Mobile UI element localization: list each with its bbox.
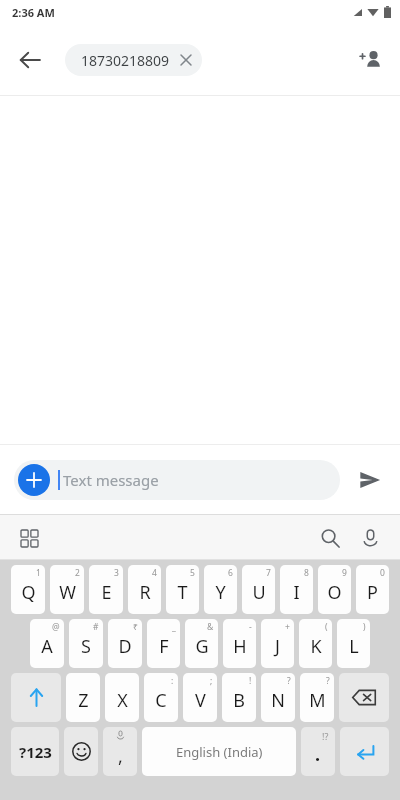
- staticText: #: [93, 621, 99, 633]
- staticText: !: [249, 675, 252, 687]
- staticText: -: [249, 621, 252, 633]
- staticText: Q: [21, 580, 36, 605]
- button[interactable]: ₹: [108, 619, 142, 668]
- staticText: 3: [114, 567, 119, 579]
- button[interactable]: 8: [280, 565, 313, 614]
- staticText: @: [52, 621, 60, 633]
- button[interactable]: Back: [8, 38, 52, 82]
- button[interactable]: -: [223, 619, 256, 668]
- staticText: R: [139, 580, 151, 605]
- button[interactable]: (: [299, 619, 332, 668]
- staticText: 2: [75, 567, 80, 579]
- button[interactable]: 18730218809: [65, 44, 202, 76]
- button[interactable]: Z: [66, 673, 100, 722]
- staticText: S: [81, 634, 91, 659]
- button[interactable]: 0: [356, 565, 389, 614]
- staticText: E: [101, 580, 112, 605]
- button[interactable]: 5: [166, 565, 199, 614]
- staticText: U: [252, 580, 266, 605]
- button[interactable]: @: [30, 619, 64, 668]
- button[interactable]: ,: [103, 727, 137, 776]
- button[interactable]: Attach: [18, 464, 50, 496]
- staticText: C: [155, 688, 167, 713]
- staticText: B: [233, 688, 245, 713]
- staticText: ?: [287, 675, 291, 687]
- button[interactable]: 2: [50, 565, 84, 614]
- staticText: ): [363, 621, 366, 633]
- staticText: W: [59, 580, 76, 605]
- staticText: 9: [342, 567, 347, 579]
- staticText: N: [271, 688, 285, 713]
- staticText: L: [349, 634, 359, 659]
- staticText: M: [309, 688, 326, 713]
- button[interactable]: X: [105, 673, 139, 722]
- staticText: 4: [152, 567, 157, 579]
- staticText: X: [117, 688, 128, 713]
- button[interactable]: 6: [204, 565, 237, 614]
- button[interactable]: English (India): [142, 727, 296, 776]
- staticText: D: [118, 634, 132, 659]
- button[interactable]: ?: [300, 673, 334, 722]
- staticText: .: [315, 742, 321, 767]
- staticText: A: [41, 634, 53, 659]
- button[interactable]: &: [185, 619, 218, 668]
- staticText: K: [310, 634, 322, 659]
- staticText: 6: [228, 567, 233, 579]
- button[interactable]: 3: [89, 565, 123, 614]
- button[interactable]: Emoji: [64, 727, 98, 776]
- button[interactable]: _: [147, 619, 180, 668]
- button[interactable]: ?123: [11, 727, 59, 776]
- staticText: !?: [322, 730, 329, 742]
- staticText: 1: [36, 567, 41, 579]
- staticText: G: [195, 634, 209, 659]
- button[interactable]: 4: [128, 565, 161, 614]
- staticText: :: [171, 675, 174, 687]
- staticText: F: [159, 634, 169, 659]
- button[interactable]: +: [261, 619, 294, 668]
- staticText: +: [285, 621, 290, 633]
- button[interactable]: #: [69, 619, 103, 668]
- button[interactable]: ): [337, 619, 370, 668]
- staticText: 0: [380, 567, 385, 579]
- button[interactable]: Backspace: [339, 673, 389, 722]
- button[interactable]: Search: [310, 518, 350, 558]
- staticText: Text message: [63, 470, 159, 490]
- button[interactable]: Add contact: [348, 38, 392, 82]
- staticText: _: [172, 621, 176, 633]
- button[interactable]: Shift: [11, 673, 61, 722]
- staticText: J: [275, 634, 280, 659]
- staticText: Z: [78, 688, 89, 713]
- staticText: ,: [118, 744, 123, 769]
- button[interactable]: Apps: [10, 519, 48, 557]
- staticText: 5: [190, 567, 195, 579]
- staticText: ;: [210, 675, 213, 687]
- staticText: 2:36 AM: [12, 5, 55, 20]
- button[interactable]: ;: [183, 673, 217, 722]
- staticText: Y: [215, 580, 226, 605]
- button[interactable]: :: [144, 673, 178, 722]
- staticText: 7: [266, 567, 271, 579]
- staticText: &: [207, 621, 214, 633]
- staticText: V: [195, 688, 206, 713]
- staticText: English (India): [176, 743, 263, 761]
- button[interactable]: Voice input: [350, 518, 390, 558]
- button[interactable]: !: [222, 673, 256, 722]
- staticText: 18730218809: [81, 51, 170, 70]
- staticText: (: [325, 621, 328, 633]
- button[interactable]: Attach: [14, 460, 340, 500]
- staticText: ₹: [133, 621, 138, 633]
- staticText: T: [177, 580, 188, 605]
- staticText: H: [233, 634, 247, 659]
- button[interactable]: ?: [261, 673, 295, 722]
- staticText: P: [367, 580, 378, 605]
- button[interactable]: !?: [301, 727, 335, 776]
- button[interactable]: Send: [346, 456, 394, 504]
- button[interactable]: 1: [11, 565, 45, 614]
- button[interactable]: 7: [242, 565, 275, 614]
- staticText: ?123: [19, 742, 52, 762]
- staticText: 8: [304, 567, 309, 579]
- button[interactable]: Enter: [340, 727, 389, 776]
- staticText: I: [293, 580, 300, 605]
- button[interactable]: 9: [318, 565, 351, 614]
- staticText: O: [327, 580, 342, 605]
